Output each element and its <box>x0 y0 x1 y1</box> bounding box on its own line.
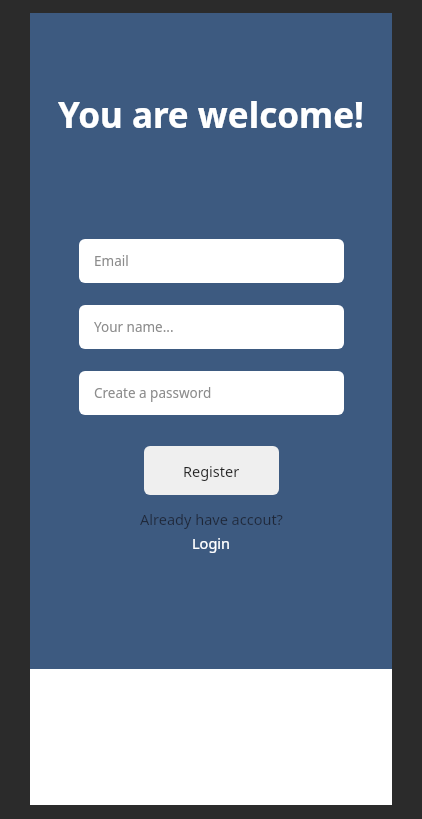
button[interactable]: Login <box>182 532 240 554</box>
staticText: Login <box>192 533 230 553</box>
staticText: Register <box>183 461 240 481</box>
button[interactable]: Already have accout? <box>132 508 291 530</box>
staticText: Create a password <box>94 384 212 402</box>
staticText: You are welcome! <box>58 91 364 139</box>
staticText: Already have accout? <box>140 509 283 529</box>
button[interactable]: Email <box>79 239 344 283</box>
staticText: Email <box>94 252 129 270</box>
button[interactable]: Your name... <box>79 305 344 349</box>
button[interactable]: Create a password <box>79 371 344 415</box>
staticText: Your name... <box>94 318 174 336</box>
button[interactable]: Register <box>144 446 279 495</box>
